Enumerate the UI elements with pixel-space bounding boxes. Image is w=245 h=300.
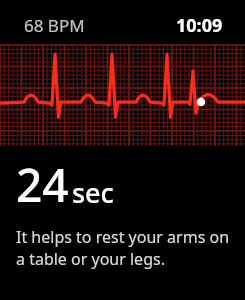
staticText: 24 xyxy=(16,153,69,216)
staticText: 68 BPM xyxy=(24,14,85,37)
staticText: It helps to rest your arms on a table or… xyxy=(16,226,235,270)
button[interactable]: ECG waveform xyxy=(0,45,245,146)
staticText: 10:09 xyxy=(176,13,223,38)
staticText: sec xyxy=(72,174,114,211)
